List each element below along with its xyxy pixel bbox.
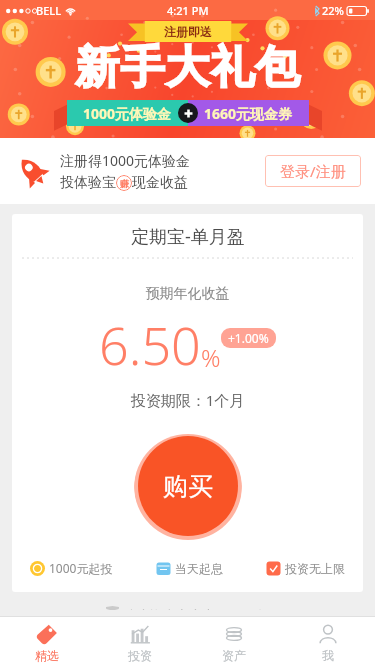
- staticText: 定期宝-单月盈: [131, 224, 245, 249]
- staticText: 注册得1000元体验金: [60, 151, 191, 170]
- button[interactable]: 定期宝-单月盈: [12, 214, 363, 592]
- staticText: 现金收益: [132, 174, 188, 192]
- staticText: 注册即送: [164, 24, 212, 39]
- staticText: 投资无上限: [285, 561, 345, 576]
- staticText: 4:21 PM: [167, 3, 209, 18]
- staticText: 账户资金安全由PICC承保: [124, 606, 270, 610]
- staticText: %: [201, 341, 221, 374]
- staticText: 精选: [35, 648, 59, 663]
- button[interactable]: 注册即送: [0, 20, 375, 138]
- button[interactable]: 购买: [134, 432, 242, 540]
- button[interactable]: 精选: [0, 617, 93, 668]
- staticText: 投体验宝: [60, 174, 116, 192]
- button[interactable]: 我: [281, 617, 375, 668]
- button[interactable]: 投资: [93, 617, 187, 668]
- staticText: 购买: [163, 471, 213, 502]
- staticText: 投资期限：1个月: [12, 390, 363, 410]
- staticText: 登录/注册: [280, 161, 346, 181]
- staticText: 1000元体验金: [83, 104, 172, 123]
- staticText: 22%: [322, 3, 344, 18]
- staticText: 当天起息: [175, 561, 223, 576]
- staticText: 6.50: [99, 309, 201, 380]
- button[interactable]: 资产: [187, 617, 281, 668]
- staticText: 新手大礼包: [75, 40, 300, 95]
- staticText: 赚: [120, 178, 129, 189]
- button[interactable]: 登录/注册: [265, 155, 361, 187]
- staticText: 1000元起投: [49, 560, 113, 576]
- staticText: 资产: [222, 648, 246, 663]
- staticText: +1.00%: [228, 330, 269, 346]
- staticText: 我: [322, 648, 334, 663]
- staticText: 预期年化收益: [12, 285, 363, 303]
- staticText: 1660元现金券: [204, 104, 293, 123]
- staticText: BELL: [36, 3, 62, 18]
- staticText: 投资: [128, 648, 152, 663]
